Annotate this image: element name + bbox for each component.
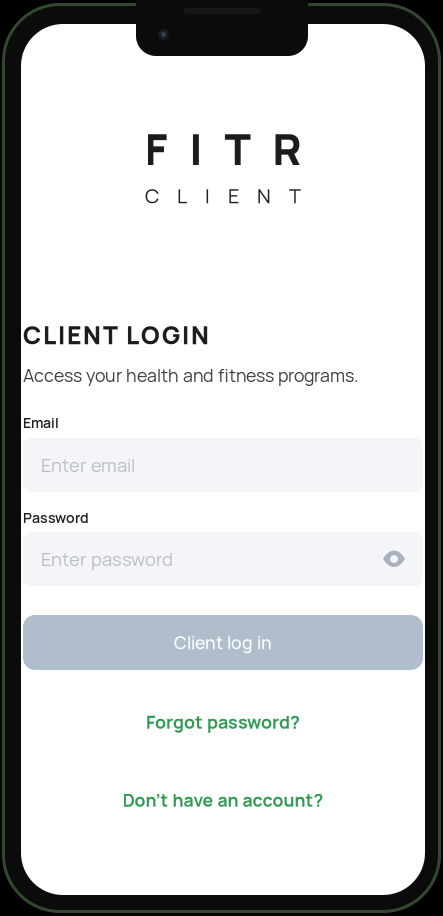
button[interactable]: Enter email [23,438,423,492]
staticText: Don't have an account? [122,788,323,812]
button[interactable]: Enter password [23,532,423,586]
button[interactable]: Forgot password? [21,707,425,737]
staticText: Forgot password? [146,710,300,734]
staticText: FITR [144,119,301,178]
staticText: Enter email [41,452,135,477]
button[interactable]: Don't have an account? [21,785,425,815]
staticText: CLIENT LOGIN [23,318,209,351]
staticText: Enter password [41,546,173,571]
staticText: Access your health and fitness programs. [23,363,358,387]
staticText: Password [23,508,89,527]
staticText: Client log in [174,630,272,654]
staticText: CLIENT [145,182,301,209]
button[interactable]: Client log in [23,615,423,670]
staticText: Email [23,413,59,432]
